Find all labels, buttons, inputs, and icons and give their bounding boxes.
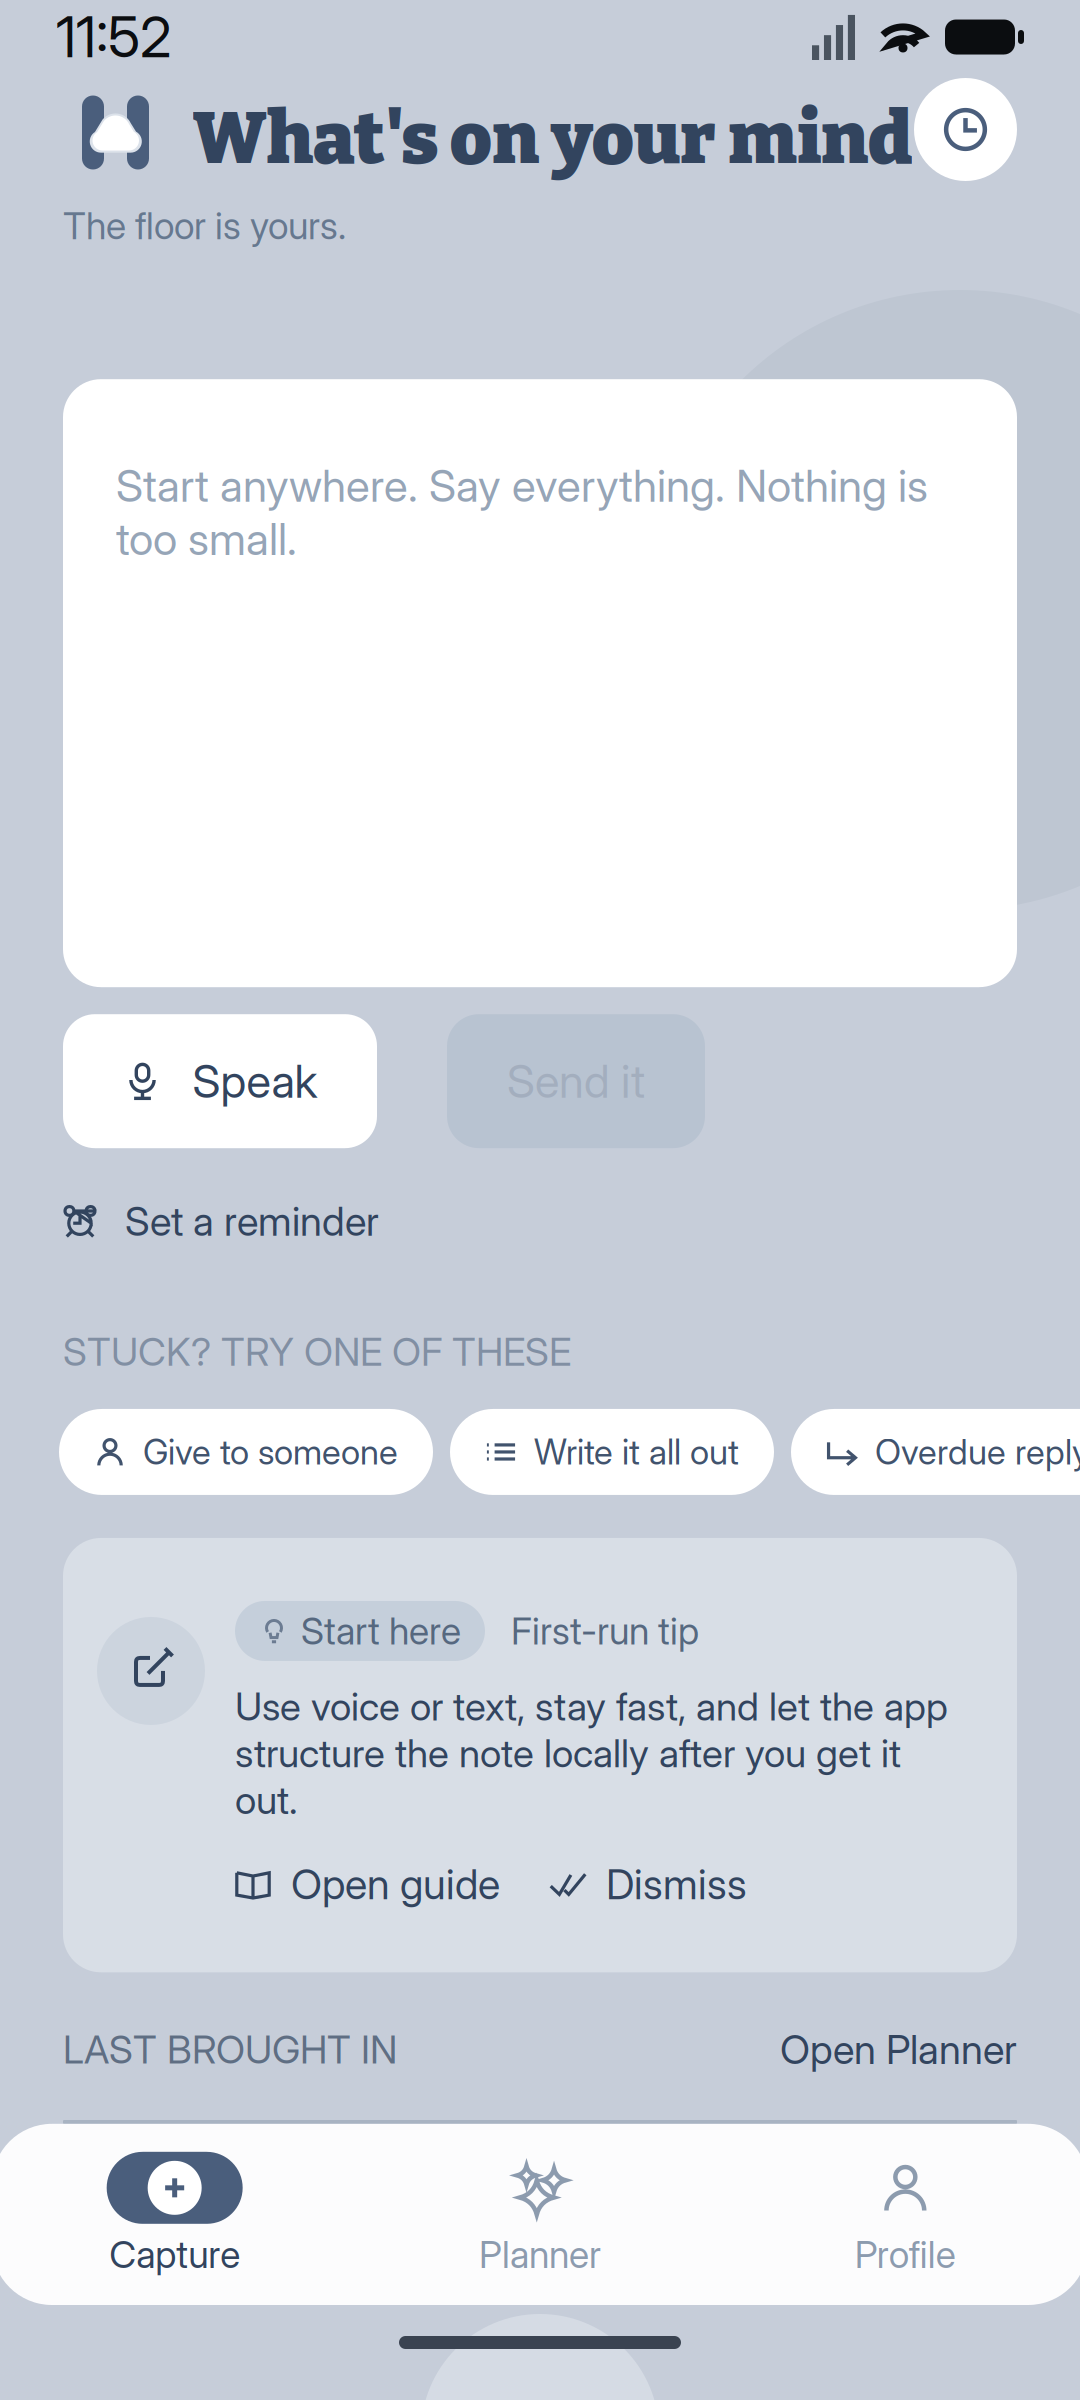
button[interactable]: Recent captures — [914, 78, 1017, 181]
staticText: Use voice or text, stay fast, and let th… — [235, 1683, 948, 1823]
button[interactable]: Open guide — [235, 1859, 500, 1909]
staticText: LAST BROUGHT IN — [63, 2026, 397, 2073]
staticText: Start anywhere. Say everything. Nothing … — [116, 459, 928, 566]
staticText: Capture — [109, 2232, 240, 2277]
button[interactable]: Capture — [0, 2152, 357, 2277]
button[interactable]: Send it — [447, 1014, 705, 1148]
staticText: Planner — [479, 2232, 601, 2277]
button[interactable]: Write it all out — [450, 1409, 774, 1495]
staticText: Send it — [507, 1054, 645, 1109]
staticText: Speak — [192, 1054, 317, 1109]
button[interactable]: Planner — [357, 2152, 723, 2277]
staticText: What's on your mind — [193, 96, 912, 182]
button[interactable]: Speak — [63, 1014, 377, 1148]
button[interactable]: Open Planner — [780, 2025, 1017, 2074]
staticText: Overdue reply — [875, 1431, 1080, 1473]
button[interactable]: Set a reminder — [0, 1192, 1080, 1250]
button[interactable]: Dismiss — [550, 1859, 747, 1909]
staticText: Give to someone — [143, 1431, 398, 1473]
button[interactable]: Give to someone — [59, 1409, 433, 1495]
staticText: Dismiss — [606, 1859, 747, 1909]
staticText: Profile — [855, 2232, 956, 2277]
staticText: 11:52 — [56, 3, 171, 71]
staticText: Open guide — [291, 1859, 500, 1909]
staticText: The floor is yours. — [63, 203, 346, 248]
staticText: Open Planner — [780, 2025, 1017, 2074]
staticText: Start here — [301, 1608, 461, 1654]
staticText: Set a reminder — [125, 1197, 379, 1245]
staticText: STUCK? TRY ONE OF THESE — [63, 1328, 571, 1375]
button[interactable]: Profile — [723, 2152, 1080, 2277]
staticText: First-run tip — [511, 1608, 699, 1654]
staticText: Write it all out — [534, 1431, 739, 1473]
button[interactable]: Overdue reply — [791, 1409, 1080, 1495]
